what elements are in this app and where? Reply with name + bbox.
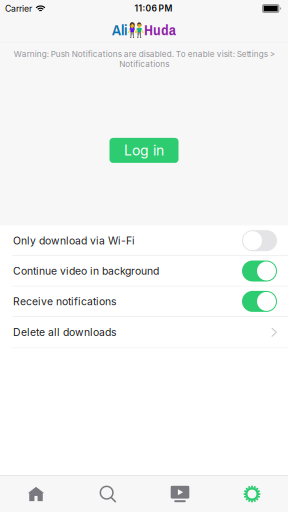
button[interactable]: Search <box>72 476 144 512</box>
button[interactable]: Videos <box>144 476 216 512</box>
staticText: Continue video in background <box>13 265 159 277</box>
button[interactable]: Receive notifications <box>0 286 288 316</box>
button[interactable]: Only download via Wi-Fi <box>0 226 288 255</box>
staticText: 11:06 PM <box>134 3 172 14</box>
button[interactable]: Settings <box>216 476 288 512</box>
staticText: Receive notifications <box>13 295 116 308</box>
staticText: Warning: Push Notifications are disabled… <box>13 49 274 69</box>
staticText: 👫 <box>127 21 144 38</box>
staticText: Huda <box>144 19 176 40</box>
button[interactable]: Continue video in background <box>0 256 288 286</box>
staticText: Ali <box>112 19 127 40</box>
button[interactable]: Home <box>0 476 72 512</box>
staticText: Delete all downloads <box>13 326 116 339</box>
staticText: Carrier <box>5 3 32 14</box>
staticText: Log in <box>124 142 164 159</box>
button[interactable]: Log in <box>109 138 178 163</box>
button[interactable]: Delete all downloads <box>0 317 288 348</box>
staticText: Only download via Wi-Fi <box>13 234 135 247</box>
